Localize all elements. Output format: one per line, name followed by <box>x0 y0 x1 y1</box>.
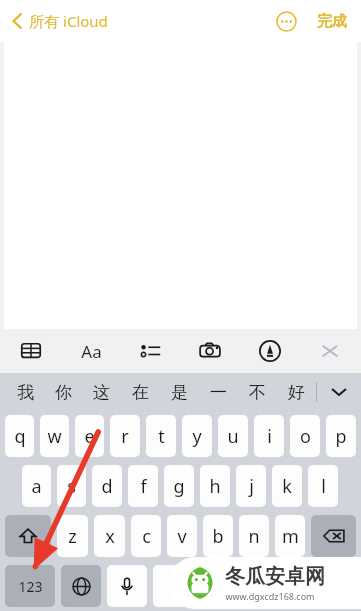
button[interactable]: Markup <box>253 334 287 368</box>
button[interactable]: o <box>290 415 320 457</box>
button[interactable]: j <box>236 465 266 507</box>
button[interactable]: n <box>239 515 269 557</box>
button[interactable]: 在 <box>121 373 160 411</box>
button[interactable]: Backspace <box>311 515 356 557</box>
staticText: q <box>14 424 26 449</box>
staticText: a <box>31 474 42 499</box>
button[interactable]: Dictate <box>107 565 147 607</box>
button[interactable]: b <box>203 515 233 557</box>
staticText: c <box>142 524 151 549</box>
button[interactable]: Collapse <box>316 373 361 411</box>
staticText: l <box>321 474 326 499</box>
staticText: 123 <box>18 577 43 596</box>
button[interactable]: d <box>92 465 122 507</box>
staticText: m <box>282 524 299 549</box>
button[interactable]: Shift <box>5 515 51 557</box>
staticText: t <box>158 424 165 449</box>
staticText: 冬瓜安卓网 <box>225 564 325 589</box>
staticText: o <box>300 424 311 449</box>
button[interactable]: Table <box>14 334 48 368</box>
staticText: z <box>68 524 77 549</box>
staticText: h <box>209 474 221 499</box>
button[interactable]: Checklist <box>134 334 168 368</box>
staticText: 一 <box>210 382 227 403</box>
button[interactable]: y <box>182 415 212 457</box>
button[interactable]: 是 <box>160 373 199 411</box>
staticText: n <box>248 524 260 549</box>
staticText: 好 <box>288 382 305 403</box>
staticText: b <box>212 524 224 549</box>
staticText: i <box>267 424 272 449</box>
button[interactable]: p <box>326 415 356 457</box>
staticText: e <box>84 424 95 449</box>
staticText: 是 <box>171 382 188 403</box>
staticText: 所有 iCloud <box>29 11 108 31</box>
staticText: p <box>335 424 347 449</box>
staticText: 完成 <box>317 12 347 31</box>
button[interactable]: f <box>128 465 158 507</box>
staticText: www.dgxcdz168.com <box>225 590 315 602</box>
staticText: g <box>173 474 185 499</box>
staticText: 这 <box>93 382 110 403</box>
button[interactable]: a <box>22 465 51 507</box>
button[interactable]: g <box>164 465 194 507</box>
button[interactable]: 不 <box>238 373 277 411</box>
button[interactable]: Camera <box>193 334 227 368</box>
button[interactable]: q <box>5 415 34 457</box>
button[interactable]: c <box>131 515 161 557</box>
button[interactable]: Aa <box>74 334 108 368</box>
button[interactable]: x <box>94 515 125 557</box>
button[interactable]: i <box>254 415 284 457</box>
button[interactable]: z <box>57 515 88 557</box>
staticText: u <box>227 424 239 449</box>
button[interactable]: Switch language <box>61 565 101 607</box>
staticText: 你 <box>55 382 72 403</box>
button[interactable]: e <box>75 415 104 457</box>
button[interactable]: l <box>308 465 338 507</box>
button[interactable]: h <box>200 465 230 507</box>
button[interactable]: 完成 <box>313 8 351 35</box>
staticText: x <box>105 524 115 549</box>
staticText: 不 <box>249 382 266 403</box>
button[interactable]: v <box>167 515 197 557</box>
button[interactable]: 我 <box>6 373 44 411</box>
button[interactable]: More options <box>271 6 301 36</box>
staticText: k <box>282 474 292 499</box>
button[interactable]: Close <box>313 334 347 368</box>
button[interactable]: u <box>218 415 248 457</box>
staticText: j <box>249 474 254 499</box>
button[interactable]: r <box>110 415 140 457</box>
button[interactable]: 123 <box>5 565 55 607</box>
staticText: 在 <box>132 382 149 403</box>
staticText: s <box>67 474 76 499</box>
staticText: r <box>121 424 129 449</box>
button[interactable]: 所有 iCloud <box>8 7 112 35</box>
staticText: f <box>140 474 147 499</box>
button[interactable]: w <box>40 415 69 457</box>
button[interactable]: 一 <box>199 373 238 411</box>
staticText: y <box>192 424 202 449</box>
button[interactable]: 这 <box>82 373 121 411</box>
button[interactable]: 好 <box>277 373 316 411</box>
button[interactable]: s <box>57 465 86 507</box>
staticText: w <box>47 424 62 449</box>
button[interactable]: 你 <box>44 373 82 411</box>
staticText: Aa <box>81 340 102 363</box>
staticText: 我 <box>17 382 34 403</box>
button[interactable] <box>153 565 356 607</box>
button[interactable]: k <box>272 465 302 507</box>
staticText: d <box>101 474 113 499</box>
button[interactable]: t <box>146 415 176 457</box>
staticText: v <box>177 524 187 549</box>
button[interactable]: m <box>275 515 305 557</box>
